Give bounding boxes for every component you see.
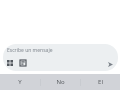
- button[interactable]: Escribe un mensaje: [3, 44, 118, 71]
- button[interactable]: Stickers: [5, 58, 14, 67]
- staticText: Escribe un mensaje: [7, 47, 53, 54]
- staticText: Y: [18, 78, 22, 86]
- button[interactable]: Gallery: [18, 58, 27, 67]
- button[interactable]: Send: [105, 59, 116, 70]
- staticText: El: [98, 78, 103, 86]
- button[interactable]: El: [81, 74, 120, 90]
- staticText: No: [56, 78, 65, 86]
- button[interactable]: No: [41, 74, 80, 90]
- button[interactable]: Y: [0, 74, 40, 90]
